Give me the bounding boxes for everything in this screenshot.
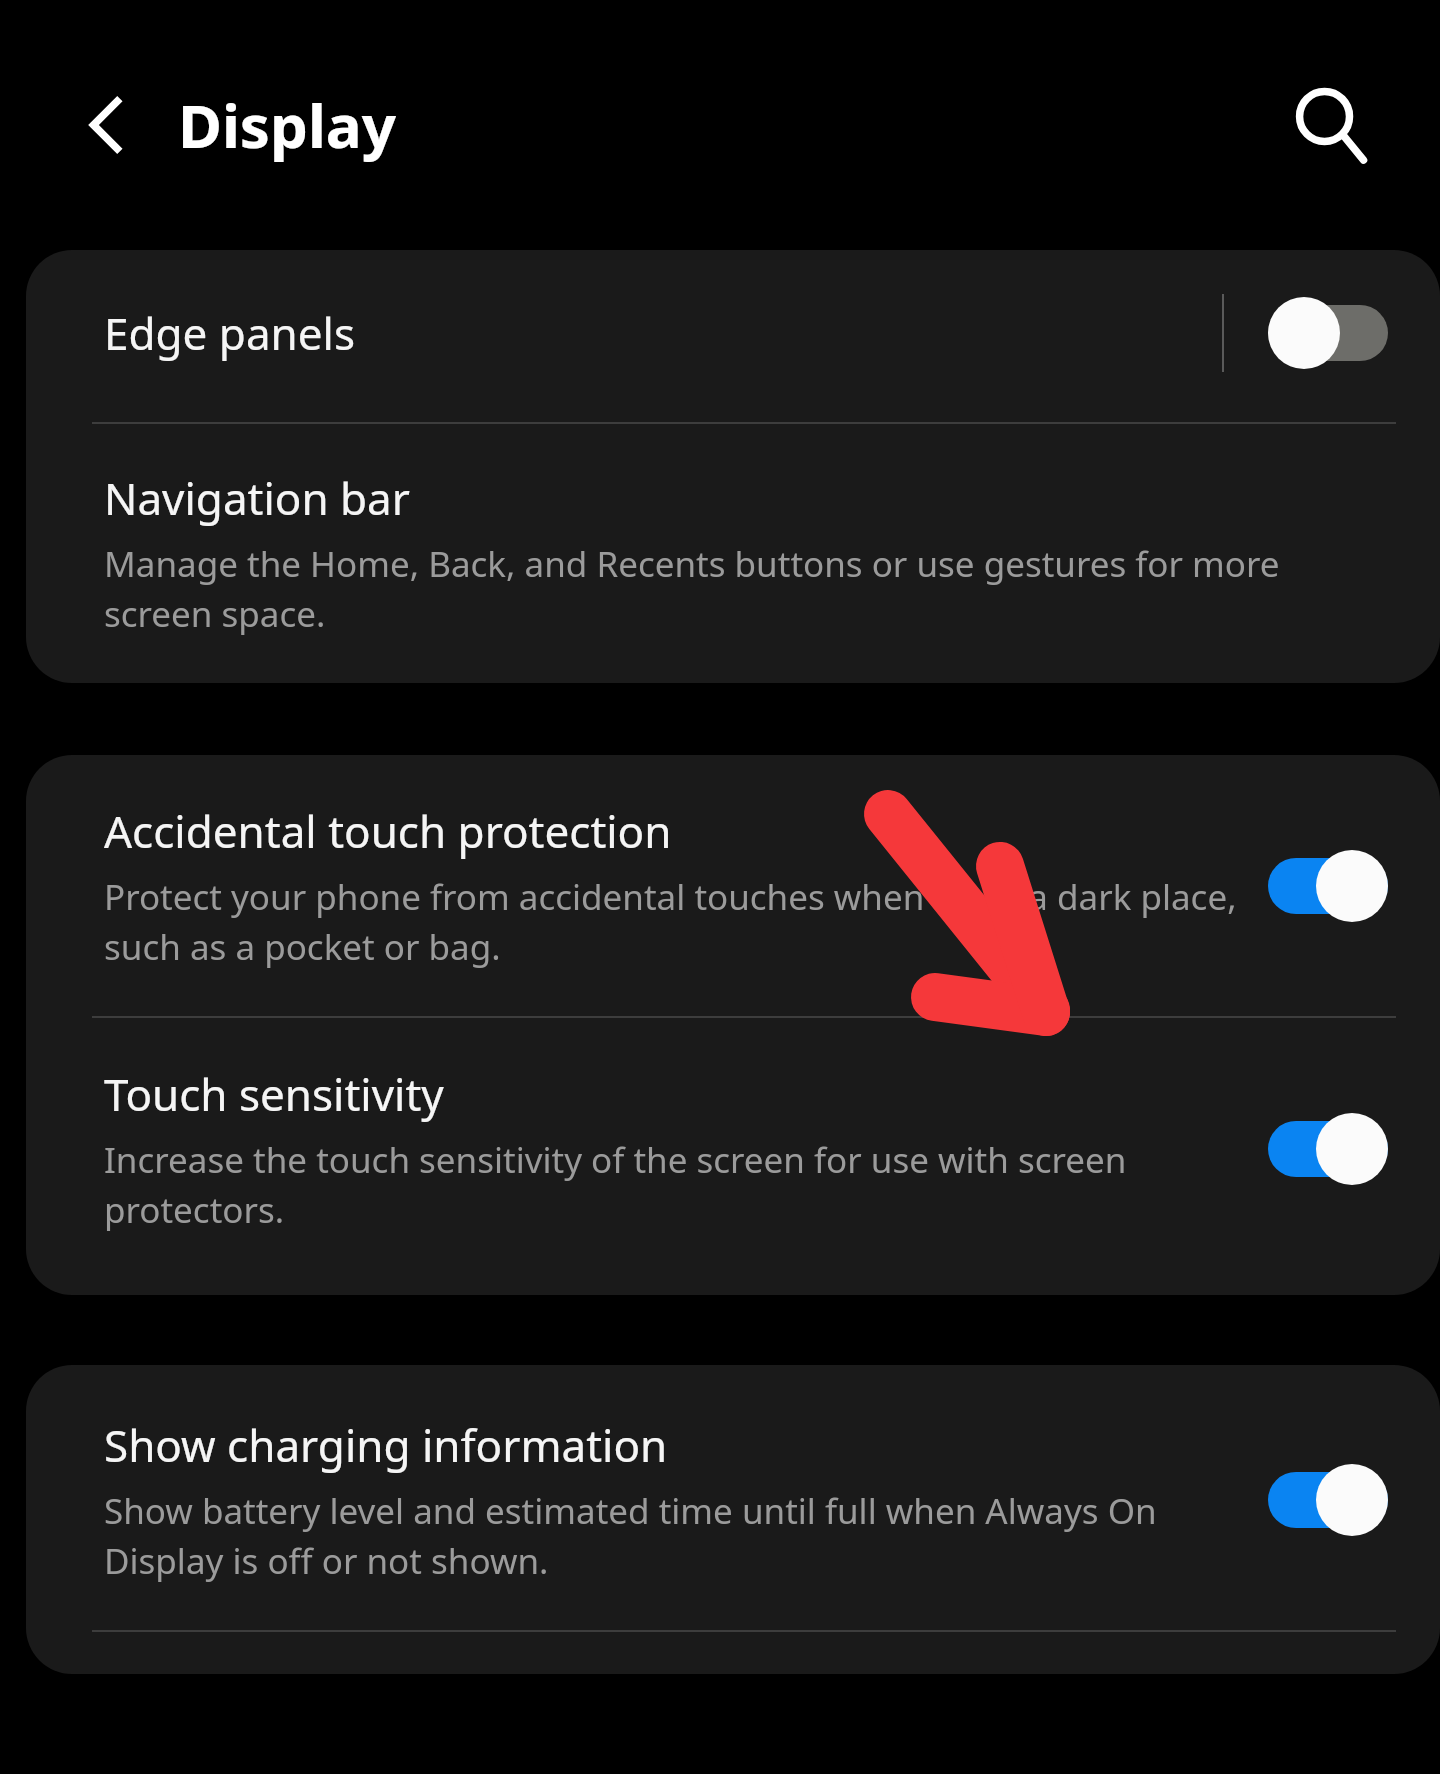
staticText: Navigation bar xyxy=(104,468,410,528)
button[interactable]: Touch sensitivity xyxy=(26,1018,1440,1295)
staticText: Increase the touch sensitivity of the sc… xyxy=(104,1136,1248,1233)
staticText: Edge panels xyxy=(104,303,356,363)
button[interactable]: Search xyxy=(1276,71,1384,179)
staticText: Touch sensitivity xyxy=(104,1064,444,1124)
staticText: Show battery level and estimated time un… xyxy=(104,1487,1248,1584)
staticText: Accidental touch protection xyxy=(104,801,672,861)
button[interactable]: Navigate up xyxy=(62,79,154,171)
button[interactable]: Switch on xyxy=(1268,1464,1388,1536)
staticText: Protect your phone from accidental touch… xyxy=(104,873,1248,970)
button[interactable]: Switch on xyxy=(1268,850,1388,922)
staticText: Display xyxy=(178,84,396,166)
button[interactable]: Edge panels xyxy=(26,250,1440,422)
button[interactable]: Switch on xyxy=(1268,1113,1388,1185)
button[interactable]: Navigation bar xyxy=(26,424,1440,683)
button[interactable]: Show charging information xyxy=(26,1365,1440,1630)
button[interactable]: Accidental touch protection xyxy=(26,755,1440,1016)
staticText: Manage the Home, Back, and Recents butto… xyxy=(104,540,1368,637)
button[interactable]: Switch off xyxy=(1268,297,1388,369)
staticText: Show charging information xyxy=(104,1415,668,1475)
